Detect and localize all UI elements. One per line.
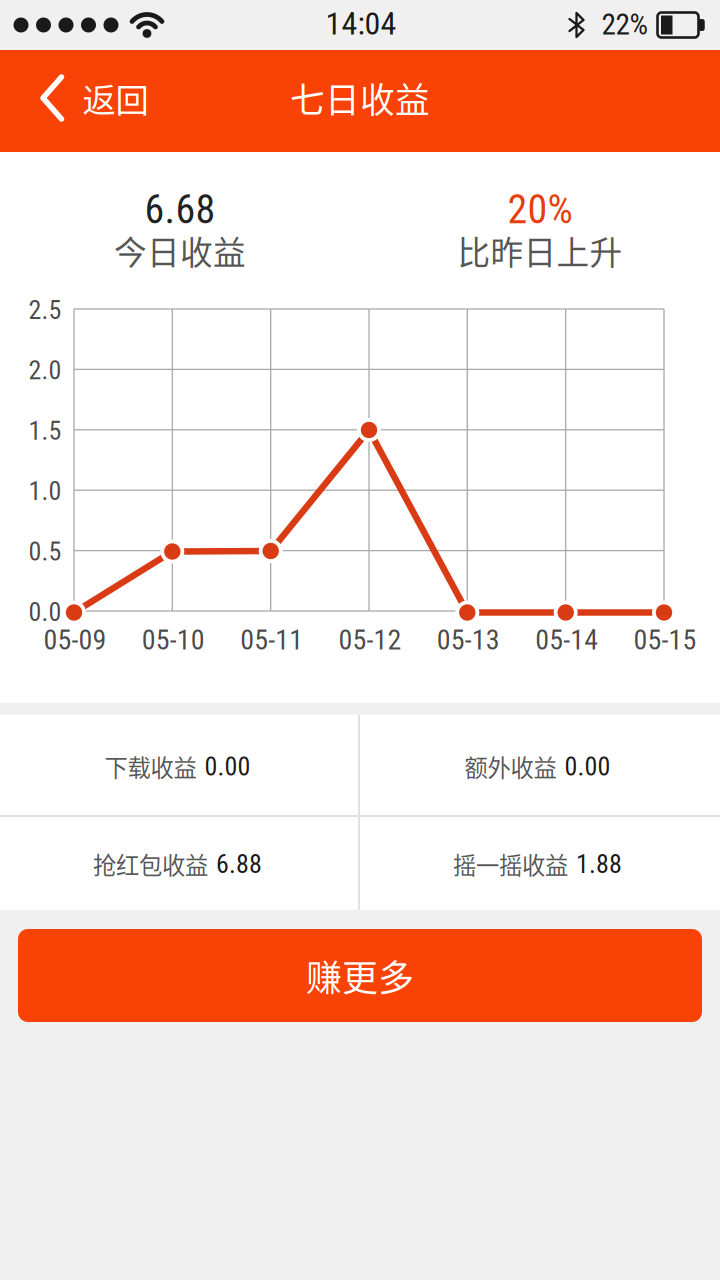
staticText: 摇一摇收益 [453, 847, 568, 881]
staticText: 05-12 [338, 624, 401, 656]
staticText: 6.88 [216, 849, 262, 879]
staticText: 0.5 [28, 536, 61, 567]
staticText: 0.00 [204, 751, 250, 782]
staticText: 1.88 [576, 849, 622, 879]
staticText: 05-15 [633, 624, 696, 656]
staticText: 05-13 [437, 624, 500, 656]
staticText: 额外收益 [464, 750, 556, 783]
staticText: 1.5 [28, 416, 61, 446]
staticText: 14:04 [325, 5, 396, 42]
staticText: 05-11 [240, 624, 303, 656]
staticText: 2.0 [28, 355, 61, 386]
staticText: 今日收益 [114, 227, 246, 274]
staticText: 6.68 [144, 186, 215, 233]
staticText: 05-10 [142, 624, 205, 656]
staticText: 比昨日上升 [457, 227, 622, 274]
staticText: 0.00 [564, 751, 610, 782]
staticText: 05-14 [535, 624, 598, 656]
staticText: 05-09 [43, 624, 106, 656]
staticText: 赚更多 [306, 949, 414, 1001]
staticText: 1.0 [28, 476, 61, 506]
staticText: 抢红包收益 [93, 847, 208, 881]
staticText: 22% [601, 7, 648, 42]
button[interactable]: 赚更多 [18, 929, 702, 1022]
staticText: 七日收益 [290, 73, 430, 123]
staticText: 0.0 [28, 597, 61, 627]
button[interactable]: 返回 [39, 74, 148, 122]
staticText: 20% [507, 186, 572, 233]
staticText: 下载收益 [104, 750, 196, 783]
staticText: 2.5 [28, 295, 61, 325]
staticText: 返回 [82, 74, 148, 122]
